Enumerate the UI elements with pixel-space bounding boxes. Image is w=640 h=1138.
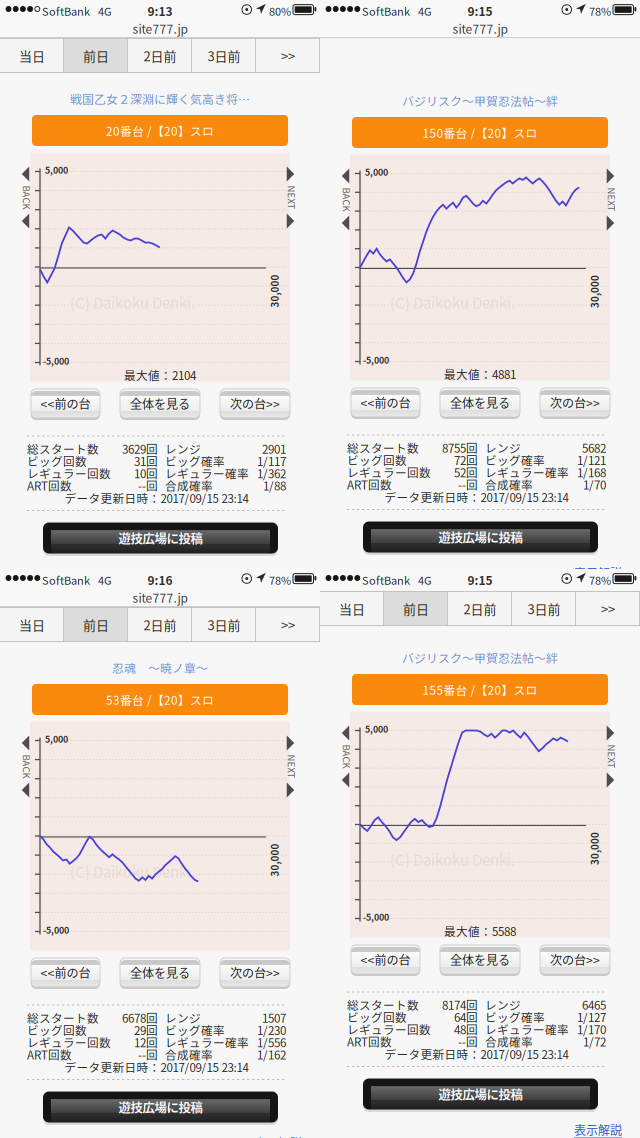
button[interactable]: NEXT [609, 154, 617, 380]
button[interactable]: 2日前 [128, 607, 192, 642]
button[interactable]: 遊技広場に投稿 [363, 1077, 598, 1111]
staticText: 当日 [339, 599, 365, 618]
button[interactable]: >> [256, 38, 320, 73]
staticText: レギュラー回数 [347, 1021, 431, 1038]
button[interactable]: <<前の台 [351, 387, 420, 418]
button[interactable]: 150番台 /【20】スロ [352, 117, 608, 148]
staticText: 1/162 [257, 1046, 286, 1063]
button[interactable]: 53番台 /【20】スロ [32, 684, 288, 715]
staticText: 1/72 [583, 1033, 606, 1050]
button[interactable]: 表示解説 [574, 1121, 622, 1138]
staticText: 9:16 [147, 571, 172, 588]
button[interactable]: 次の台>> [220, 388, 290, 419]
staticText: 全体を見る [130, 395, 190, 412]
button[interactable]: 表示解説 [254, 1134, 302, 1138]
staticText: データ更新日時：2017/09/15 23:14 [64, 1058, 248, 1075]
button[interactable]: BACK [24, 152, 32, 381]
button[interactable]: NEXT [609, 711, 617, 937]
button[interactable]: 遊技広場に投稿 [43, 521, 278, 555]
button[interactable]: BACK [24, 721, 32, 950]
staticText: <<前の台 [40, 395, 90, 412]
staticText: 80% [269, 3, 291, 19]
button[interactable]: 前日 [384, 591, 448, 626]
button[interactable]: 全体を見る [440, 387, 520, 418]
button[interactable]: <<前の台 [31, 388, 100, 419]
button[interactable]: 遊技広場に投稿 [43, 1090, 278, 1124]
staticText: レンジ [165, 1009, 201, 1026]
staticText: 1/362 [257, 465, 286, 482]
staticText: バジリスク～甲賀忍法帖～絆 [402, 649, 558, 666]
button[interactable]: >> [256, 607, 320, 642]
staticText: NEXT [600, 193, 624, 206]
staticText: (C) Daikoku Denki. [70, 860, 195, 882]
staticText: -5,000 [363, 353, 389, 366]
button[interactable]: 3日前 [192, 607, 256, 642]
staticText: バジリスク～甲賀忍法帖～絆 [402, 92, 558, 109]
button[interactable]: 2日前 [128, 38, 192, 73]
button[interactable]: 次の台>> [540, 387, 610, 418]
staticText: 1/127 [577, 1009, 606, 1025]
button[interactable]: 当日 [0, 38, 64, 73]
staticText: (C) Daikoku Denki. [390, 848, 515, 870]
button[interactable]: 次の台>> [220, 957, 290, 988]
button[interactable]: 155番台 /【20】スロ [352, 674, 608, 705]
button[interactable]: <<前の台 [351, 944, 420, 975]
staticText: 5,000 [365, 165, 388, 178]
staticText: 1/556 [257, 1034, 286, 1051]
staticText: 1/168 [577, 464, 606, 481]
button[interactable]: 表示解説 [574, 564, 622, 581]
staticText: 合成確率 [165, 1046, 213, 1063]
staticText: 遊技広場に投稿 [118, 529, 202, 547]
staticText: 最大値：2104 [124, 367, 196, 383]
staticText: 2日前 [143, 615, 176, 634]
staticText: 10回 [134, 465, 158, 482]
button[interactable]: NEXT [289, 152, 297, 381]
button[interactable]: 3日前 [192, 38, 256, 73]
staticText: 前日 [83, 46, 109, 65]
staticText: 150番台 /【20】スロ [422, 124, 537, 141]
button[interactable]: 遊技広場に投稿 [363, 520, 598, 554]
staticText: SoftBank [362, 3, 410, 19]
button[interactable]: 20番台 /【20】スロ [32, 115, 288, 146]
staticText: ART回数 [347, 476, 392, 493]
button[interactable]: 全体を見る [440, 944, 520, 975]
button[interactable]: >> [576, 591, 640, 626]
staticText: レギュラー回数 [347, 464, 431, 481]
button[interactable]: BACK [344, 154, 352, 380]
staticText: NEXT [280, 191, 304, 204]
staticText: --回 [138, 477, 158, 494]
staticText: 78% [589, 572, 611, 588]
staticText: 3日前 [527, 599, 560, 618]
button[interactable]: NEXT [289, 721, 297, 950]
staticText: レンジ [485, 996, 521, 1013]
staticText: 総スタート数 [347, 996, 419, 1013]
button[interactable]: BACK [344, 711, 352, 937]
staticText: 合成確率 [165, 477, 213, 494]
button[interactable]: 当日 [320, 591, 384, 626]
staticText: レギュラー確率 [165, 1034, 249, 1051]
staticText: <<前の台 [40, 964, 90, 981]
staticText: 当日 [19, 615, 45, 634]
staticText: 1/170 [577, 1021, 606, 1038]
button[interactable]: 全体を見る [120, 957, 200, 988]
button[interactable]: <<前の台 [31, 957, 100, 988]
staticText: 遊技広場に投稿 [438, 528, 522, 546]
button[interactable]: 前日 [64, 607, 128, 642]
button[interactable]: 2日前 [448, 591, 512, 626]
staticText: 1507 [262, 1009, 286, 1026]
button[interactable]: 全体を見る [120, 388, 200, 419]
staticText: 1/117 [257, 453, 286, 469]
button[interactable]: 3日前 [512, 591, 576, 626]
staticText: ビッグ回数 [347, 1009, 407, 1025]
staticText: 30,000 [258, 284, 291, 298]
staticText: データ更新日時：2017/09/15 23:14 [64, 489, 248, 506]
button[interactable]: 次の台>> [540, 944, 610, 975]
staticText: 戦国乙女２深淵に輝く気高き将… [70, 90, 250, 107]
staticText: 1/230 [257, 1022, 286, 1038]
staticText: 9:13 [147, 2, 172, 19]
staticText: レンジ [165, 440, 201, 457]
button[interactable]: 前日 [64, 38, 128, 73]
staticText: 前日 [403, 599, 429, 618]
button[interactable]: 当日 [0, 607, 64, 642]
staticText: 次の台>> [230, 964, 280, 981]
